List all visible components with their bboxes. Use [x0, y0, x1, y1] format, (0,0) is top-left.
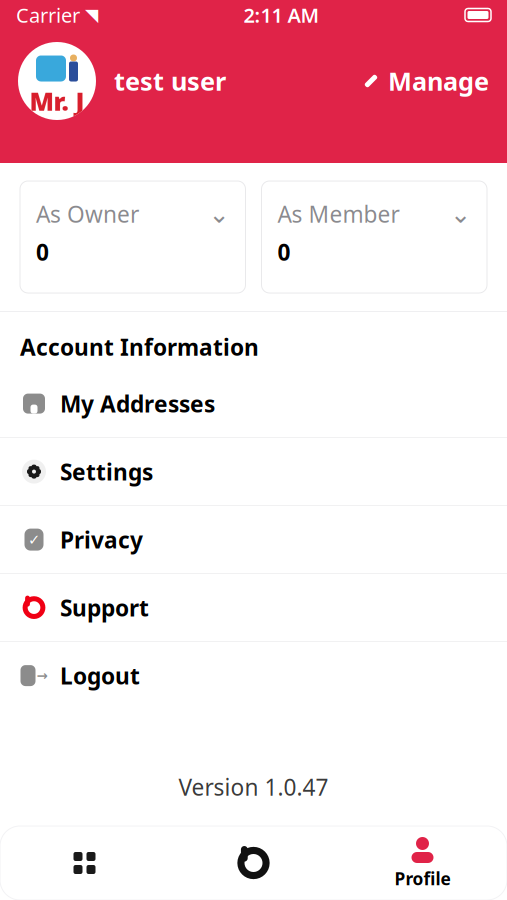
staticText: My Addresses [60, 389, 215, 419]
staticText: ✓ [28, 531, 40, 548]
staticText: ⌄ [450, 200, 471, 228]
staticText: Profile [394, 867, 450, 890]
button[interactable]: → [0, 642, 507, 709]
staticText: 0 [277, 237, 290, 267]
staticText: Carrier [16, 2, 80, 28]
button[interactable]: As Member [261, 181, 487, 293]
button[interactable]: Profile [338, 826, 507, 900]
staticText: Logout [60, 661, 140, 691]
staticText: As Owner [36, 199, 139, 229]
button[interactable]: Home [0, 826, 169, 900]
staticText: Support [60, 593, 149, 623]
button[interactable]: Support [0, 574, 507, 641]
staticText: 2:11 AM [243, 2, 319, 28]
staticText: test user [114, 64, 226, 98]
button[interactable]: Browse [169, 826, 338, 900]
staticText: → [36, 668, 47, 683]
staticText: Mr. J [29, 84, 84, 118]
staticText: 0 [36, 237, 49, 267]
button[interactable]: ✓ [0, 506, 507, 573]
staticText: Settings [60, 457, 153, 487]
button[interactable]: Manage [362, 58, 489, 104]
staticText: As Member [277, 199, 399, 229]
staticText: Version 1.0.47 [178, 772, 328, 802]
staticText: Account Information [20, 332, 259, 362]
staticText: ◥ [85, 5, 98, 25]
staticText: Privacy [60, 525, 143, 555]
staticText: ⌄ [208, 200, 229, 228]
button[interactable]: My Addresses [0, 370, 507, 437]
button[interactable]: Settings [0, 438, 507, 505]
button[interactable]: As Owner [20, 181, 245, 293]
staticText: Manage [388, 64, 489, 98]
